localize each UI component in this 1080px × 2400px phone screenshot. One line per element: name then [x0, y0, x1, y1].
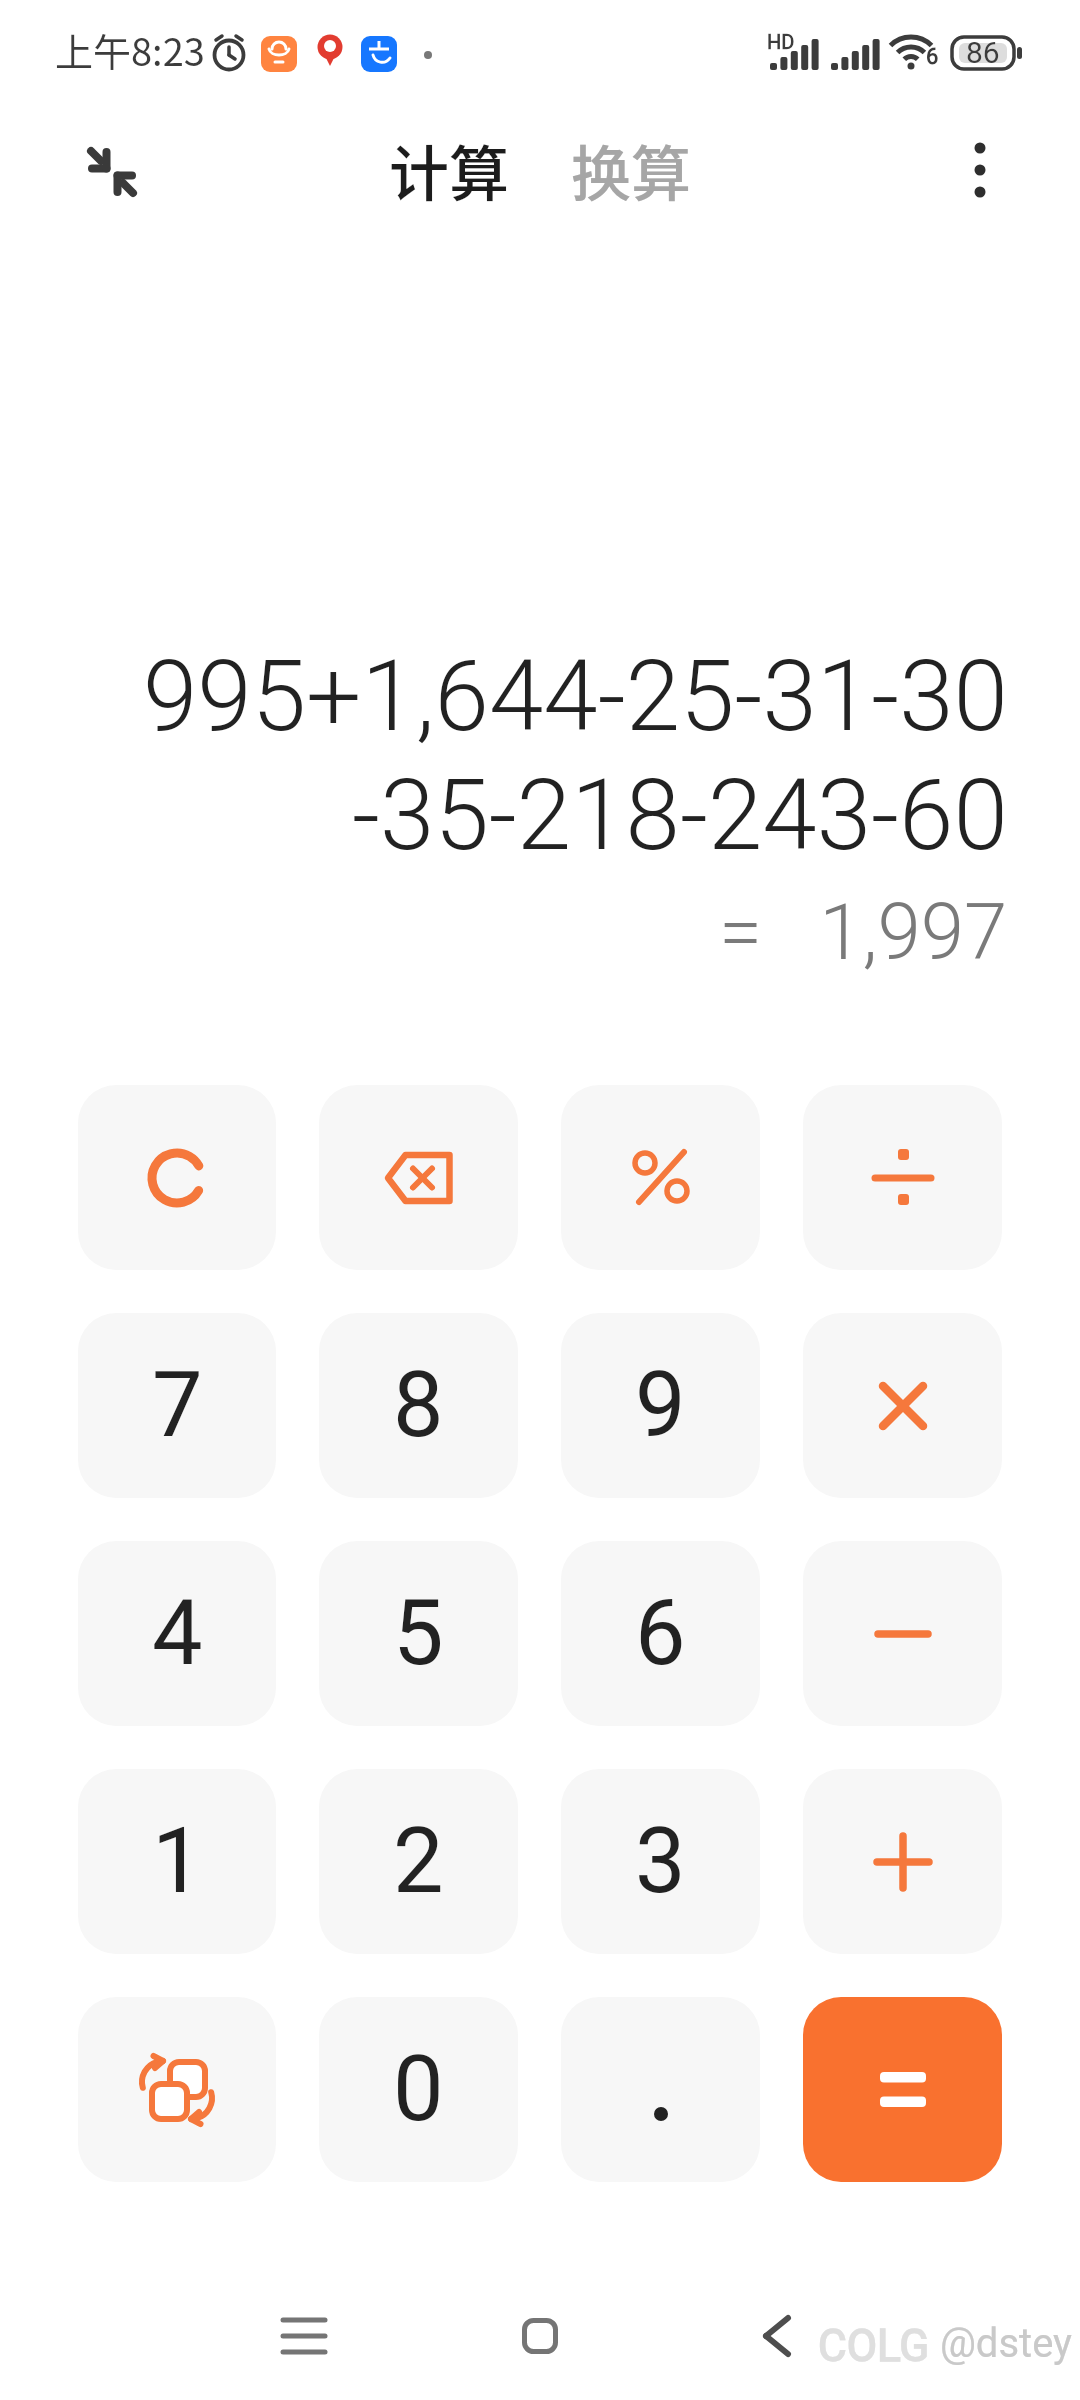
staticText: 计算: [389, 126, 509, 213]
button[interactable]: 6: [561, 1541, 760, 1726]
staticText: 5: [393, 1581, 444, 1686]
staticText: 1: [152, 1809, 203, 1914]
staticText: HD: [767, 30, 795, 53]
staticText: COLG: [818, 2320, 930, 2372]
button[interactable]: 7: [78, 1313, 276, 1498]
staticText: 9: [635, 1353, 686, 1458]
staticText: 8: [393, 1353, 444, 1458]
button[interactable]: [803, 1313, 1002, 1498]
button[interactable]: 0: [319, 1997, 518, 2182]
button[interactable]: [803, 1541, 1002, 1726]
staticText: 995+1,644-25-31-30: [143, 639, 1008, 754]
button[interactable]: 4: [78, 1541, 276, 1726]
staticText: 上午8:23: [55, 22, 205, 77]
button[interactable]: [803, 1085, 1002, 1270]
button[interactable]: 3: [561, 1769, 760, 1954]
button[interactable]: 5: [319, 1541, 518, 1726]
staticText: 3: [635, 1809, 686, 1914]
staticText: 86: [966, 35, 1000, 70]
button[interactable]: [319, 1085, 518, 1270]
staticText: 4: [152, 1581, 203, 1686]
button[interactable]: [254, 2286, 354, 2386]
button[interactable]: 1: [78, 1769, 276, 1954]
button[interactable]: [561, 1085, 760, 1270]
button[interactable]: [561, 1997, 760, 2182]
staticText: @dstey: [930, 2320, 1073, 2367]
button[interactable]: 计算: [389, 126, 509, 213]
button[interactable]: [78, 1997, 276, 2182]
button[interactable]: [803, 1997, 1002, 2182]
staticText: 2: [393, 1809, 444, 1914]
staticText: 6: [926, 44, 939, 70]
button[interactable]: [727, 2286, 827, 2386]
staticText: 换算: [571, 126, 691, 213]
button[interactable]: 8: [319, 1313, 518, 1498]
staticText: 0: [393, 2037, 444, 2142]
button[interactable]: 2: [319, 1769, 518, 1954]
staticText: -35-218-243-60: [352, 758, 1008, 873]
button[interactable]: 9: [561, 1313, 760, 1498]
staticText: 7: [152, 1353, 203, 1458]
button[interactable]: [78, 1085, 276, 1270]
button[interactable]: [940, 130, 1020, 210]
staticText: = 1,997: [719, 887, 1008, 978]
staticText: 6: [635, 1581, 686, 1686]
button[interactable]: [67, 127, 157, 217]
button[interactable]: 换算: [571, 126, 691, 213]
button[interactable]: [490, 2286, 590, 2386]
button[interactable]: [803, 1769, 1002, 1954]
